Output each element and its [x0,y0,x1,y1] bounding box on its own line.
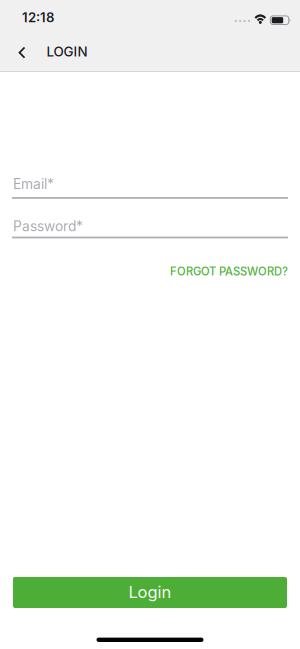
button[interactable]: Back [0,35,36,71]
staticText: 12:18 [22,9,54,25]
staticText: Email* [13,176,54,192]
staticText: LOGIN [47,43,88,60]
button[interactable]: Login [13,577,287,608]
button[interactable]: FORGOT PASSWORD? [170,265,288,278]
staticText: Login [128,582,171,602]
staticText: Password* [13,218,83,234]
staticText: FORGOT PASSWORD? [170,265,288,278]
